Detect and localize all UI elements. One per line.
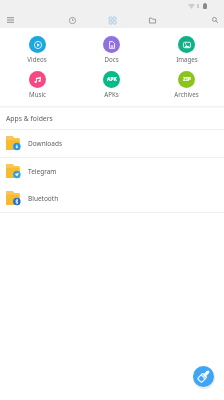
button[interactable]: Search <box>206 12 224 28</box>
staticText: Downloads <box>28 139 63 148</box>
button[interactable]: Open navigation menu <box>0 12 20 28</box>
button[interactable]: Browse folders <box>142 12 162 28</box>
button[interactable]: Recent files <box>62 12 82 28</box>
button[interactable]: Images <box>149 36 224 63</box>
button[interactable]: ZIP <box>149 71 224 98</box>
button[interactable]: Bluetooth <box>0 185 224 212</box>
button[interactable]: Categories <box>102 12 122 28</box>
button[interactable]: Videos <box>0 36 74 63</box>
staticText: Videos <box>27 55 47 63</box>
staticText: APK <box>107 76 117 83</box>
button[interactable]: Downloads <box>0 130 224 157</box>
staticText: Bluetooth <box>28 194 59 203</box>
staticText: Apps & folders <box>6 114 53 123</box>
staticText: Images <box>176 55 198 63</box>
button[interactable]: Clean up junk files <box>193 366 214 387</box>
staticText: Docs <box>104 55 119 63</box>
button[interactable]: Music <box>0 71 74 98</box>
staticText: Music <box>29 90 46 98</box>
staticText: Telegram <box>28 167 57 176</box>
button[interactable]: APK <box>74 71 149 98</box>
button[interactable]: Docs <box>74 36 149 63</box>
button[interactable]: Telegram <box>0 158 224 185</box>
staticText: ZIP <box>183 76 191 83</box>
staticText: APKs <box>104 90 119 98</box>
staticText: Archives <box>174 90 199 98</box>
